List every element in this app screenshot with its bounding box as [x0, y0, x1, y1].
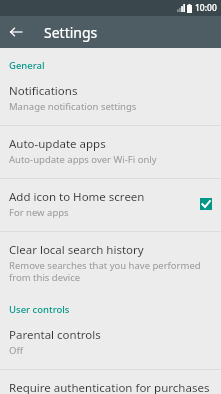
staticText: Auto-update apps — [9, 136, 106, 152]
staticText: Auto-update apps over Wi-Fi only — [9, 153, 157, 166]
staticText: For new apps — [9, 206, 69, 219]
button[interactable]: Add icon to Home screen — [200, 198, 212, 210]
button[interactable]: Back — [0, 16, 32, 48]
staticText: 10:00 — [195, 2, 217, 14]
staticText: User controls — [9, 303, 70, 316]
button[interactable]: Auto-update apps — [0, 129, 221, 174]
staticText: Remove searches that you have performed … — [9, 259, 212, 284]
staticText: Clear local search history — [9, 242, 144, 258]
button[interactable]: Notifications — [0, 76, 221, 121]
button[interactable]: Parental controls — [0, 320, 221, 365]
button[interactable]: Add icon to Home screen — [0, 182, 221, 227]
staticText: Require authentication for purchases — [9, 380, 210, 394]
staticText: Add icon to Home screen — [9, 189, 145, 205]
staticText: Notifications — [9, 83, 78, 99]
button[interactable]: Clear local search history — [0, 235, 221, 292]
button[interactable]: Require authentication for purchases — [0, 373, 221, 394]
staticText: Settings — [44, 23, 98, 42]
staticText: Manage notification settings — [9, 100, 137, 113]
staticText: General — [9, 59, 45, 72]
staticText: Off — [9, 344, 23, 357]
staticText: Parental controls — [9, 327, 101, 343]
